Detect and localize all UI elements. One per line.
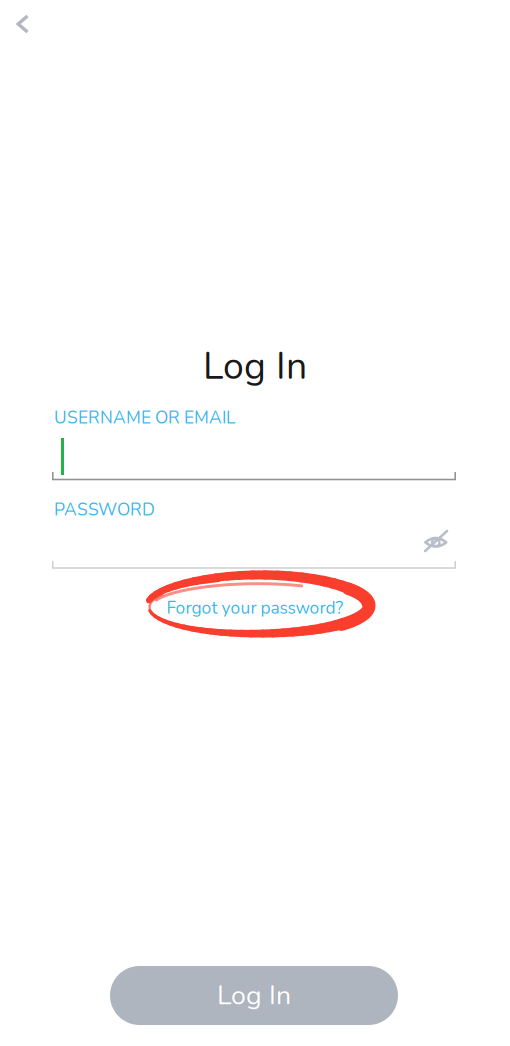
staticText: Log In [203, 341, 307, 392]
staticText: PASSWORD [54, 498, 155, 522]
staticText: USERNAME OR EMAIL [54, 406, 235, 430]
button[interactable]: Back [0, 2, 46, 46]
staticText: Forgot your password? [166, 596, 343, 620]
button[interactable]: Forgot your password? [0, 594, 510, 622]
button[interactable]: Show password [414, 519, 458, 563]
button[interactable]: Log In [110, 966, 398, 1025]
staticText: Log In [217, 977, 291, 1014]
